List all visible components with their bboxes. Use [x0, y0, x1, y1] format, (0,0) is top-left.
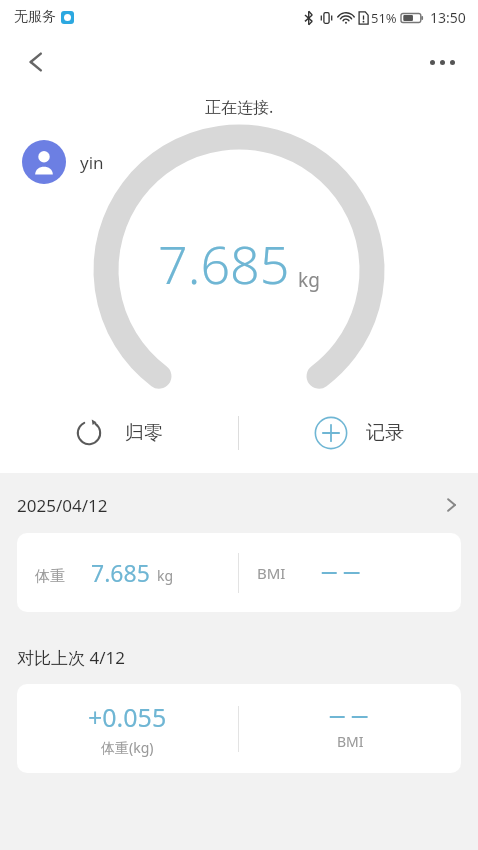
- staticText: 7.685: [91, 557, 150, 588]
- staticText: +0.055: [88, 700, 167, 734]
- staticText: 无服务: [14, 8, 56, 26]
- staticText: kg: [298, 267, 320, 293]
- staticText: 正在连接.: [205, 96, 274, 118]
- button[interactable]: yin: [22, 140, 104, 184]
- staticText: BMI: [257, 563, 286, 583]
- staticText: 记录: [366, 421, 404, 445]
- button[interactable]: 2025/04/12: [0, 486, 478, 524]
- button[interactable]: 体重: [17, 533, 461, 612]
- button[interactable]: 归零: [0, 393, 238, 473]
- button[interactable]: 记录: [239, 393, 478, 473]
- staticText: 对比上次 4/12: [17, 646, 125, 669]
- staticText: kg: [157, 566, 174, 585]
- staticText: 体重(kg): [101, 738, 154, 757]
- button[interactable]: +0.055: [17, 684, 461, 773]
- staticText: BMI: [337, 732, 364, 751]
- staticText: 体重: [35, 567, 65, 586]
- button[interactable]: More options: [418, 38, 466, 86]
- button[interactable]: Back: [12, 38, 60, 86]
- staticText: 2025/04/12: [17, 494, 108, 517]
- staticText: yin: [80, 151, 104, 174]
- staticText: 归零: [125, 421, 163, 445]
- staticText: 7.685: [158, 228, 290, 299]
- staticText: 51%: [371, 9, 397, 27]
- staticText: 13:50: [430, 8, 466, 27]
